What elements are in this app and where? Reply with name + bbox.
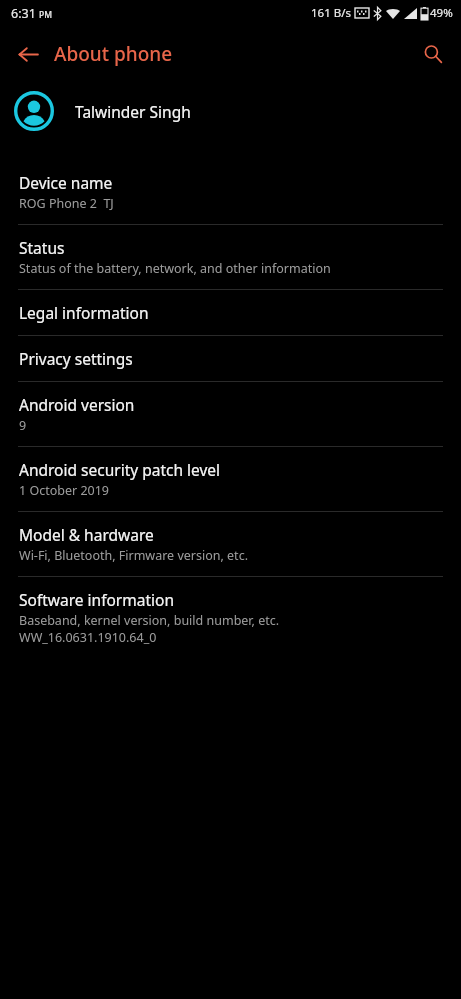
button[interactable]: Legal information: [0, 290, 461, 335]
button[interactable]: Status: [0, 225, 461, 289]
button[interactable]: Privacy settings: [0, 336, 461, 381]
staticText: Android version: [19, 394, 135, 415]
staticText: ROG Phone 2 TJ: [19, 195, 114, 212]
button[interactable]: Android version: [0, 382, 461, 446]
staticText: Wi-Fi, Bluetooth, Firmware version, etc.: [19, 547, 248, 564]
staticText: Legal information: [19, 302, 149, 323]
button[interactable]: Model & hardware: [0, 512, 461, 576]
button[interactable]: Search: [413, 34, 453, 74]
staticText: 49%: [430, 5, 453, 21]
button[interactable]: Android security patch level: [0, 447, 461, 511]
staticText: 1 October 2019: [19, 482, 109, 499]
staticText: Status of the battery, network, and othe…: [19, 260, 331, 277]
staticText: Device name: [19, 172, 113, 193]
button[interactable]: Device name: [0, 160, 461, 224]
staticText: PM: [39, 9, 52, 21]
button[interactable]: Talwinder Singh: [0, 82, 461, 140]
button[interactable]: Back: [8, 34, 48, 74]
staticText: 9: [19, 417, 27, 434]
staticText: 161 B/s: [311, 5, 351, 21]
staticText: Software information: [19, 589, 174, 610]
staticText: About phone: [54, 41, 173, 67]
staticText: Privacy settings: [19, 348, 133, 369]
staticText: Talwinder Singh: [75, 101, 191, 122]
staticText: Baseband, kernel version, build number, …: [19, 612, 280, 629]
staticText: WW_16.0631.1910.64_0: [19, 629, 157, 646]
staticText: Android security patch level: [19, 459, 221, 480]
staticText: 6:31: [11, 5, 36, 22]
staticText: Model & hardware: [19, 524, 154, 545]
button[interactable]: Software information: [0, 577, 461, 658]
staticText: Status: [19, 237, 65, 258]
